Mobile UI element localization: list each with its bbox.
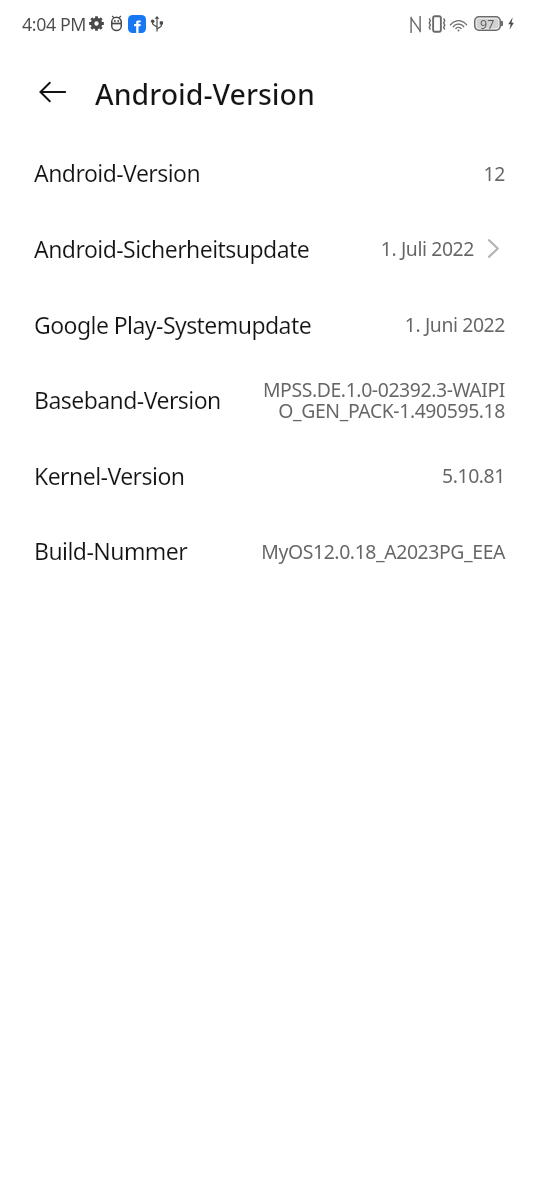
staticText: Android-Version (34, 157, 201, 188)
button[interactable]: Google Play-Systemupdate (0, 286, 540, 362)
button[interactable]: Kernel-Version (0, 437, 540, 513)
staticText: 1. Juni 2022 (345, 311, 505, 337)
staticText: Baseband-Version (34, 384, 221, 415)
button[interactable]: Build-Nummer (0, 513, 540, 588)
staticText: Build-Nummer (34, 535, 188, 566)
staticText: 4:04 PM (22, 12, 87, 36)
staticText: Google Play-Systemupdate (34, 309, 312, 340)
button[interactable]: Android-Sicherheitsupdate (0, 210, 540, 286)
staticText: Android-Sicherheitsupdate (34, 233, 310, 264)
staticText: Android-Version (95, 75, 315, 114)
staticText: MPSS.DE.1.0-02392.3-WAIPI O_GEN_PACK-1.4… (245, 376, 505, 424)
staticText: Kernel-Version (34, 460, 185, 491)
button[interactable]: Baseband-Version (0, 362, 540, 437)
button[interactable]: Back (28, 68, 76, 116)
staticText: MyOS12.0.18_A2023PG_EEA (205, 538, 505, 564)
button[interactable]: Android-Version (0, 135, 540, 210)
staticText: 5.10.81 (345, 462, 505, 488)
staticText: 12 (385, 160, 505, 186)
staticText: 97 (480, 16, 495, 31)
staticText: 1. Juli 2022 (334, 235, 474, 261)
